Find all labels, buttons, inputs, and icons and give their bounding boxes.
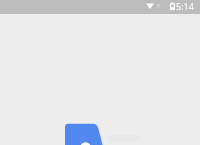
staticText: 5:14 [176,0,194,11]
button[interactable]: Compose [65,124,103,145]
